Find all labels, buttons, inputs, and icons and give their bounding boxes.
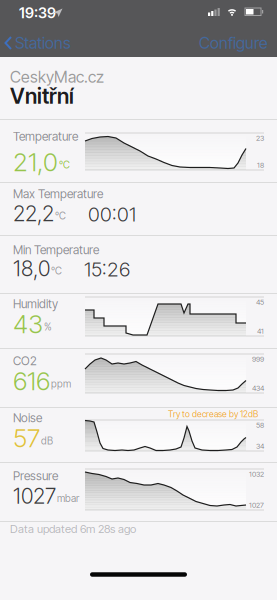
staticText: 00:01	[88, 202, 136, 226]
staticText: ppm	[51, 378, 71, 390]
staticText: °C	[59, 159, 70, 171]
staticText: Stations	[15, 33, 71, 53]
staticText: 999	[252, 355, 264, 363]
button[interactable]: Min Temperature	[0, 236, 277, 293]
button[interactable]: 45	[0, 294, 277, 348]
staticText: 43	[13, 309, 43, 339]
staticText: °C	[55, 210, 66, 222]
staticText: Data updated 6m 28s ago	[10, 522, 136, 536]
staticText: 15:26	[84, 257, 130, 281]
button[interactable]: 1032	[0, 463, 277, 521]
staticText: %	[44, 321, 52, 333]
staticText: 45	[256, 298, 264, 306]
button[interactable]: Max Temperature	[0, 183, 277, 235]
staticText: Max Temperature	[13, 187, 103, 201]
staticText: 1032	[249, 470, 264, 478]
button[interactable]: 58	[0, 408, 277, 462]
staticText: mbar	[57, 492, 79, 504]
staticText: 1027	[249, 501, 264, 509]
button[interactable]: 23	[0, 120, 277, 182]
staticText: dB	[41, 435, 53, 447]
staticText: 57	[13, 423, 40, 453]
staticText: 58	[256, 421, 264, 429]
staticText: 1027	[13, 483, 56, 509]
staticText: 18,0	[13, 256, 50, 281]
staticText: CO2	[13, 354, 37, 368]
staticText: Pressure	[13, 469, 58, 483]
staticText: 19:39	[19, 4, 56, 22]
staticText: 434	[252, 384, 264, 392]
button[interactable]: 999	[0, 349, 277, 407]
button[interactable]: Configure	[0, 0, 277, 57]
staticText: 23	[256, 134, 264, 142]
staticText: 21,0	[13, 147, 58, 177]
staticText: Noise	[13, 411, 42, 425]
staticText: Min Temperature	[13, 243, 99, 257]
staticText: 34	[256, 442, 264, 450]
staticText: Temperature	[13, 129, 78, 144]
staticText: 22,2	[13, 201, 54, 226]
staticText: Try to decrease by 12dB	[168, 409, 258, 419]
staticText: °C	[51, 265, 62, 277]
staticText: 616	[13, 366, 50, 396]
staticText: 41	[257, 327, 264, 335]
staticText: CeskyMac.cz	[10, 67, 104, 87]
button[interactable]: Stations	[0, 0, 70, 57]
staticText: Humidity	[13, 297, 58, 311]
staticText: Configure	[199, 33, 268, 53]
staticText: 18	[257, 161, 264, 169]
staticText: Vnitřní	[10, 83, 74, 109]
